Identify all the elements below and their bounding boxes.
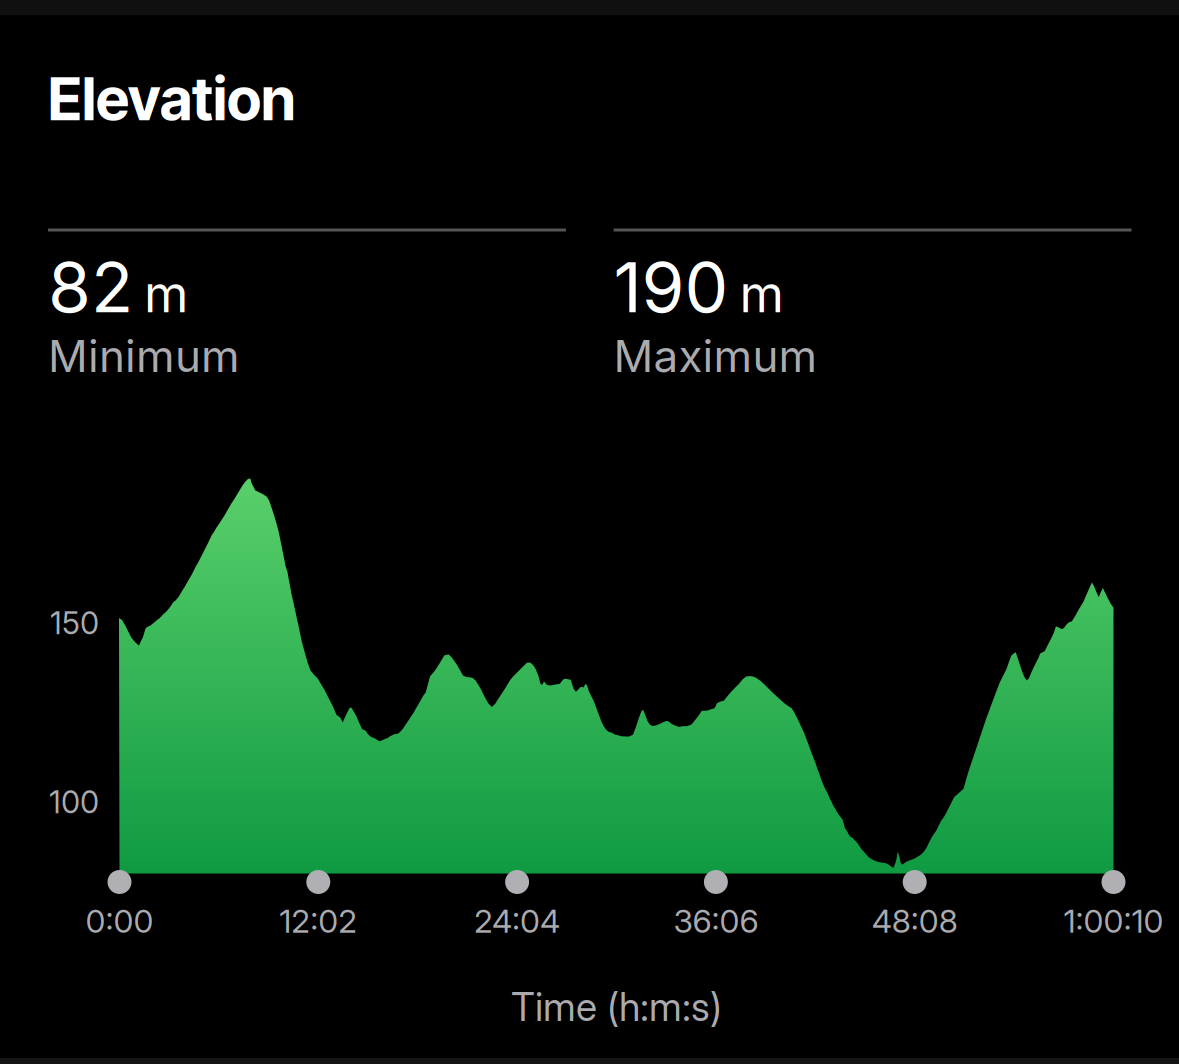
staticText: 0:00 (85, 902, 153, 940)
staticText: 36:06 (673, 902, 758, 940)
button[interactable]: Elevation chart (119, 470, 1113, 873)
staticText: 24:04 (474, 902, 560, 940)
staticText: 190 (613, 245, 728, 329)
staticText: Time (h:m:s) (511, 984, 722, 1030)
staticText: m (144, 263, 188, 324)
staticText: 12:02 (279, 902, 357, 940)
staticText: 100 (49, 783, 99, 820)
staticText: 150 (50, 604, 99, 641)
staticText: m (739, 263, 783, 324)
staticText: Maximum (613, 329, 817, 383)
staticText: 82 (48, 245, 133, 329)
staticText: Minimum (48, 329, 240, 383)
staticText: 1:00:10 (1063, 902, 1163, 940)
staticText: 48:08 (872, 902, 958, 940)
staticText: Elevation (48, 63, 296, 134)
